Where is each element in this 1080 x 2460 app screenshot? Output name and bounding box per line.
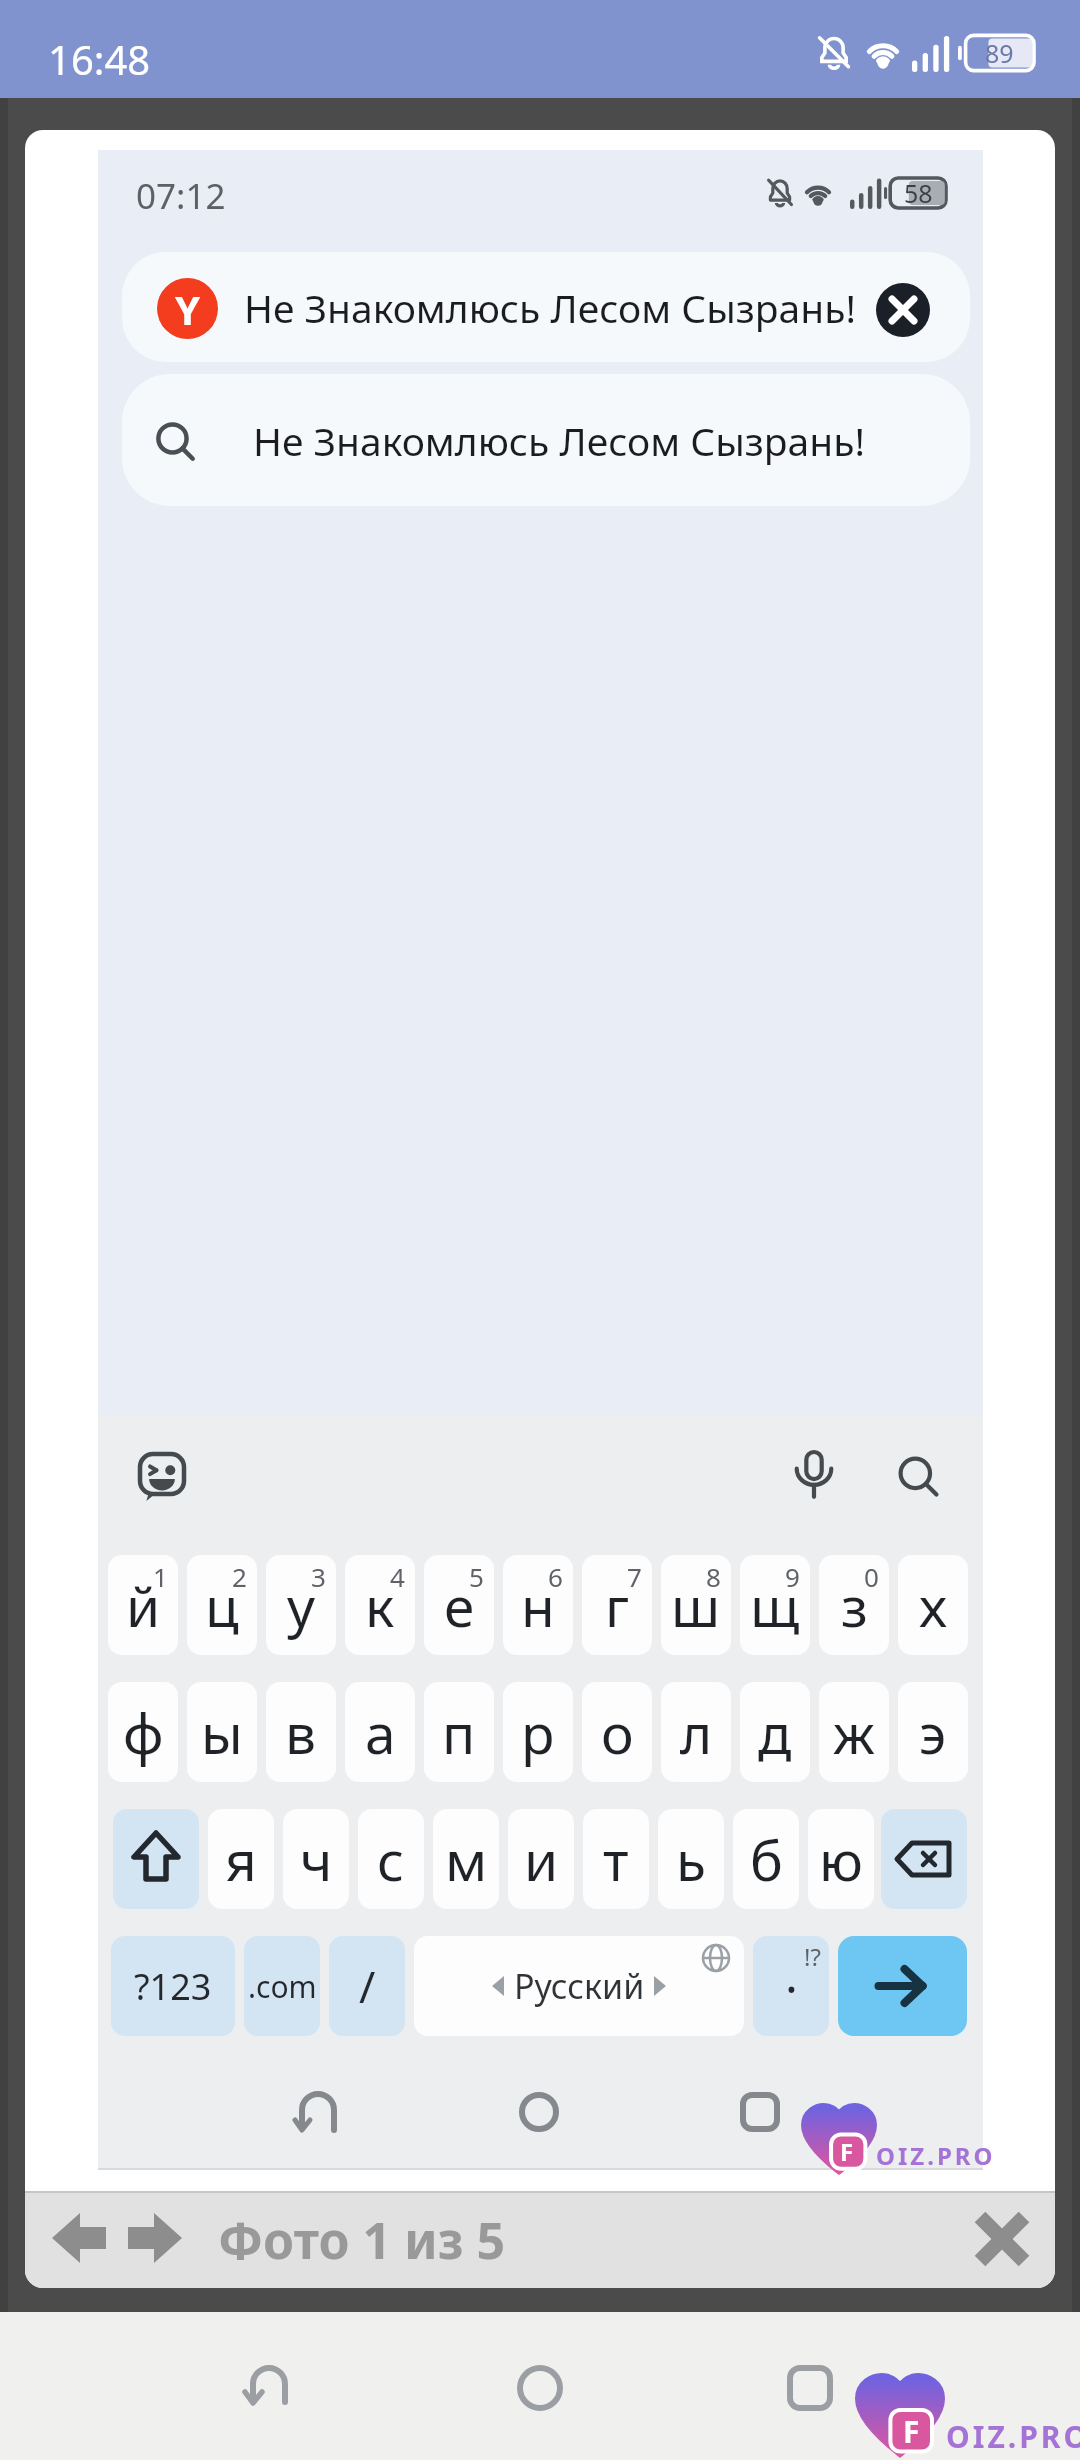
button[interactable]: б xyxy=(733,1809,799,1909)
button[interactable]: / xyxy=(329,1936,405,2036)
button[interactable] xyxy=(974,2212,1030,2266)
button[interactable]: й xyxy=(108,1555,178,1655)
button[interactable]: д xyxy=(740,1682,810,1782)
staticText: OIZ.PRO xyxy=(876,2139,996,2172)
button[interactable]: и xyxy=(508,1809,574,1909)
staticText: т xyxy=(603,1822,629,1897)
button[interactable]: о xyxy=(582,1682,652,1782)
button[interactable]: а xyxy=(345,1682,415,1782)
button[interactable] xyxy=(126,2210,184,2266)
staticText: ы xyxy=(201,1695,243,1770)
button[interactable]: к xyxy=(345,1555,415,1655)
staticText: ж xyxy=(833,1695,875,1770)
staticText: з xyxy=(841,1568,868,1643)
staticText: Фото 1 из 5 xyxy=(218,2206,506,2274)
staticText: и xyxy=(524,1822,559,1897)
button[interactable] xyxy=(50,2210,108,2266)
button[interactable] xyxy=(838,1936,967,2036)
staticText: OIZ.PRO xyxy=(946,2416,1080,2457)
staticText: 8 xyxy=(706,1559,721,1594)
staticText: л xyxy=(680,1695,713,1770)
staticText: ь xyxy=(676,1822,706,1897)
button[interactable]: Русский xyxy=(414,1936,744,2036)
button[interactable]: .com xyxy=(244,1936,320,2036)
staticText: 58 xyxy=(904,176,933,210)
staticText: р xyxy=(521,1695,555,1770)
staticText: ш xyxy=(671,1568,721,1643)
staticText: 89 xyxy=(985,36,1014,70)
button[interactable] xyxy=(876,283,930,337)
staticText: в xyxy=(285,1695,317,1770)
button[interactable] xyxy=(122,252,970,362)
staticText: . xyxy=(785,1942,798,2007)
button[interactable]: ж xyxy=(819,1682,889,1782)
button[interactable]: р xyxy=(503,1682,573,1782)
button[interactable]: м xyxy=(433,1809,499,1909)
staticText: / xyxy=(359,1956,376,2016)
button[interactable] xyxy=(243,2362,295,2414)
button[interactable] xyxy=(113,1809,199,1909)
button[interactable]: ю xyxy=(808,1809,874,1909)
staticText: ч xyxy=(300,1822,333,1897)
button[interactable] xyxy=(740,2093,780,2131)
button[interactable] xyxy=(519,2092,559,2132)
staticText: Не Знакомлюсь Лесом Сызрань! xyxy=(253,414,865,467)
button[interactable]: е xyxy=(424,1555,494,1655)
button[interactable]: п xyxy=(424,1682,494,1782)
button[interactable]: ш xyxy=(661,1555,731,1655)
staticText: б xyxy=(750,1822,783,1897)
staticText: г xyxy=(605,1568,630,1643)
button[interactable]: в xyxy=(266,1682,336,1782)
button[interactable]: з xyxy=(819,1555,889,1655)
button[interactable]: ф xyxy=(108,1682,178,1782)
button[interactable]: ы xyxy=(187,1682,257,1782)
button[interactable]: ь xyxy=(658,1809,724,1909)
button[interactable]: я xyxy=(208,1809,274,1909)
staticText: э xyxy=(919,1695,947,1770)
staticText: п xyxy=(442,1695,476,1770)
staticText: ?123 xyxy=(134,1962,212,2011)
staticText: 7 xyxy=(627,1559,642,1594)
staticText: 9 xyxy=(785,1559,800,1594)
staticText: х xyxy=(919,1568,948,1643)
staticText: д xyxy=(758,1695,792,1770)
button[interactable] xyxy=(516,2364,564,2412)
staticText: о xyxy=(601,1695,634,1770)
staticText: с xyxy=(377,1822,405,1897)
staticText: я xyxy=(225,1822,257,1897)
staticText: ю xyxy=(819,1822,863,1897)
button[interactable] xyxy=(881,1809,967,1909)
staticText: щ xyxy=(750,1568,800,1643)
staticText: н xyxy=(521,1568,555,1643)
staticText: Русский xyxy=(514,1963,645,2009)
staticText: F xyxy=(903,2411,920,2452)
button[interactable]: . xyxy=(753,1936,829,2036)
button[interactable]: ц xyxy=(187,1555,257,1655)
staticText: 1 xyxy=(153,1559,168,1594)
staticText: 6 xyxy=(548,1559,563,1594)
staticText: м xyxy=(445,1822,488,1897)
staticText: 16:48 xyxy=(48,32,151,86)
button[interactable]: у xyxy=(266,1555,336,1655)
button[interactable]: щ xyxy=(740,1555,810,1655)
staticText: 3 xyxy=(311,1559,326,1594)
button[interactable]: э xyxy=(898,1682,968,1782)
button[interactable]: г xyxy=(582,1555,652,1655)
button[interactable] xyxy=(788,2366,832,2410)
staticText: е xyxy=(444,1568,475,1643)
button[interactable] xyxy=(293,2088,343,2136)
button[interactable]: ч xyxy=(283,1809,349,1909)
button[interactable] xyxy=(122,374,970,506)
staticText: к xyxy=(365,1568,395,1643)
staticText: Y xyxy=(175,282,201,336)
button[interactable]: л xyxy=(661,1682,731,1782)
staticText: ф xyxy=(123,1695,164,1770)
button[interactable]: т xyxy=(583,1809,649,1909)
staticText: ц xyxy=(205,1568,239,1643)
staticText: й xyxy=(126,1568,161,1643)
button[interactable]: х xyxy=(898,1555,968,1655)
staticText: Не Знакомлюсь Лесом Сызрань! xyxy=(244,281,856,334)
button[interactable]: ?123 xyxy=(111,1936,235,2036)
button[interactable]: с xyxy=(358,1809,424,1909)
button[interactable]: н xyxy=(503,1555,573,1655)
